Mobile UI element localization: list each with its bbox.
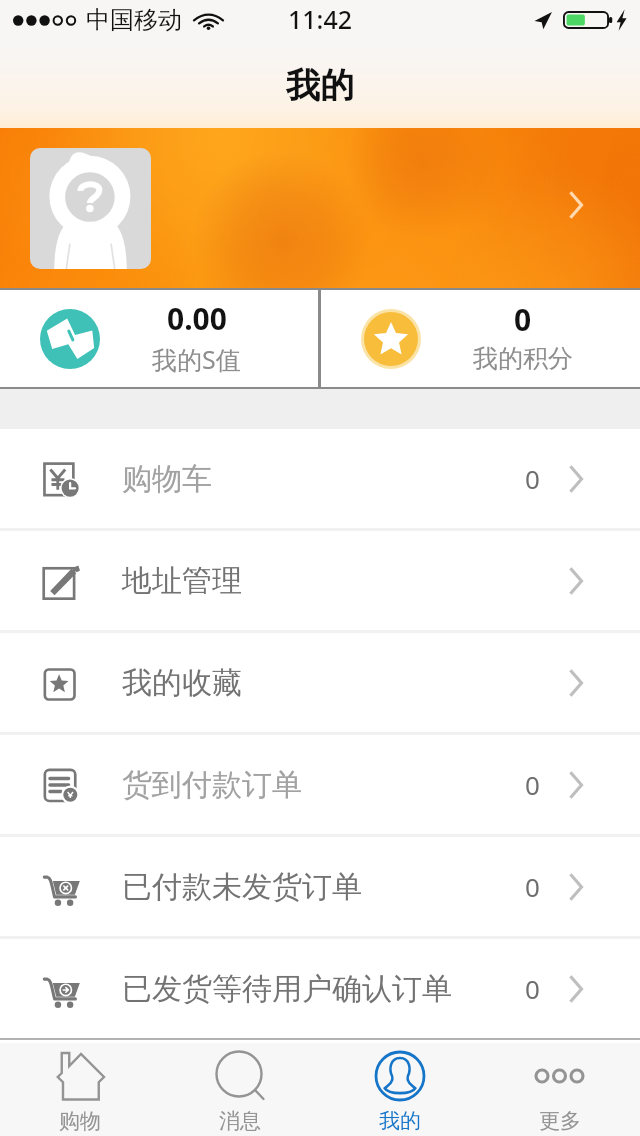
staticText: 0 <box>525 461 540 496</box>
staticText: 我的积分 <box>473 343 573 374</box>
staticText: 0 <box>525 971 540 1006</box>
staticText: 11:42 <box>288 2 353 36</box>
staticText: 我的 <box>379 1108 421 1134</box>
staticText: 购物 <box>59 1108 101 1134</box>
staticText: 消息 <box>219 1108 261 1134</box>
button[interactable]: 已发货等待用户确认订单 <box>0 939 640 1038</box>
staticText: 中国移动 <box>86 5 182 35</box>
staticText: 货到付款订单 <box>122 766 302 804</box>
staticText: 我的S值 <box>152 342 241 376</box>
staticText: 0 <box>525 767 540 802</box>
staticText: 已发货等待用户确认订单 <box>122 970 452 1008</box>
button[interactable]: Profile details <box>0 128 640 288</box>
button[interactable]: 0 <box>321 288 640 389</box>
button[interactable]: 货到付款订单 <box>0 735 640 834</box>
button[interactable]: 我的 <box>320 1038 480 1136</box>
button[interactable]: 购物车 <box>0 429 640 528</box>
button[interactable]: 消息 <box>160 1038 320 1136</box>
staticText: 已付款未发货订单 <box>122 868 362 906</box>
staticText: 我的收藏 <box>122 664 242 702</box>
staticText: 购物车 <box>122 460 212 498</box>
button[interactable]: 已付款未发货订单 <box>0 837 640 936</box>
staticText: 我的 <box>286 64 354 107</box>
staticText: 0 <box>525 869 540 904</box>
button[interactable]: 我的收藏 <box>0 633 640 732</box>
button[interactable]: 购物 <box>0 1038 160 1136</box>
staticText: 地址管理 <box>122 562 242 600</box>
staticText: 更多 <box>539 1108 581 1134</box>
staticText: 0 <box>514 299 532 340</box>
staticText: 0.00 <box>167 298 227 339</box>
button[interactable]: 更多 <box>480 1038 640 1136</box>
button[interactable]: 地址管理 <box>0 531 640 630</box>
other: Profile details <box>570 192 583 218</box>
button[interactable]: 0.00 <box>0 288 318 389</box>
